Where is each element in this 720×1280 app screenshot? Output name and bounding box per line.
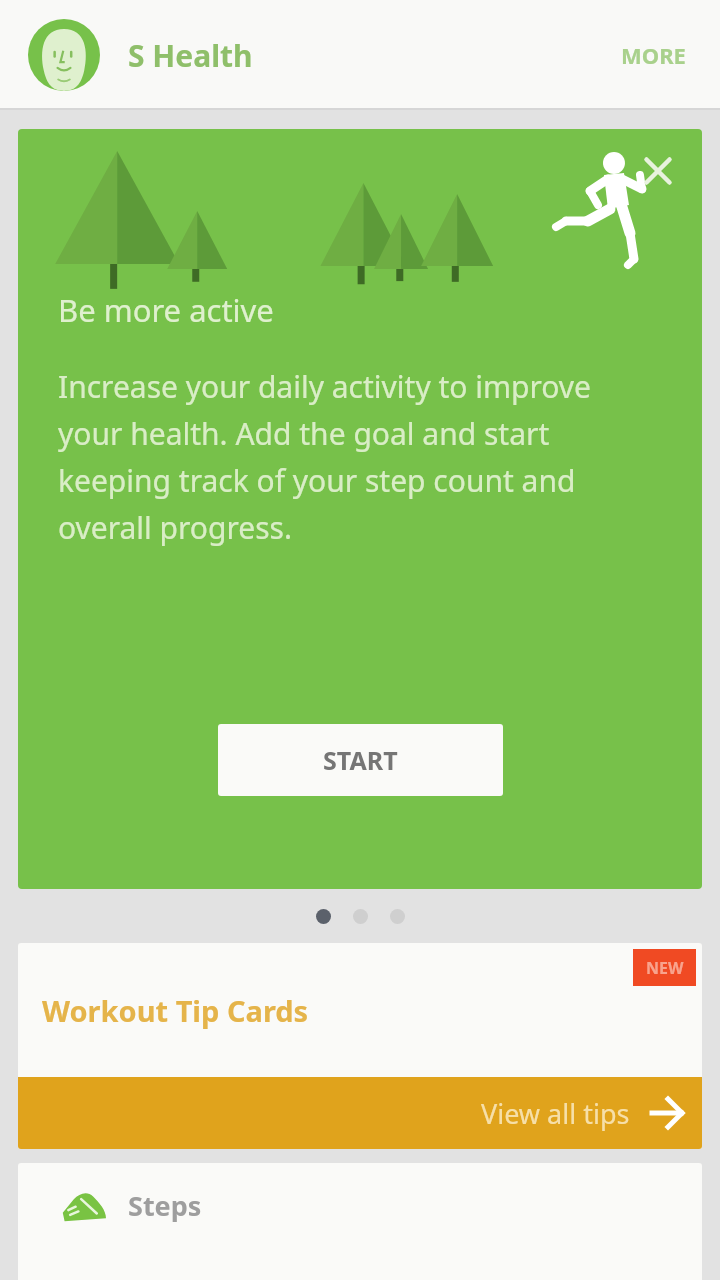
button[interactable]: START [218, 724, 503, 796]
button[interactable]: Close [18, 129, 702, 889]
staticText: NEW [646, 957, 684, 979]
button[interactable] [316, 909, 331, 924]
button[interactable]: NEW [18, 943, 702, 1077]
staticText: Steps [128, 1187, 202, 1224]
staticText: Be more active [58, 289, 274, 331]
button[interactable]: MORE [615, 34, 692, 76]
staticText: Workout Tip Cards [42, 991, 309, 1030]
button[interactable] [390, 909, 405, 924]
button[interactable]: Close [634, 147, 682, 195]
button[interactable]: Steps [18, 1163, 702, 1280]
staticText: START [323, 743, 398, 777]
staticText: View all tips [481, 1095, 630, 1132]
staticText: Increase your daily activity to improve … [58, 366, 662, 548]
button[interactable]: View all tips [18, 1077, 702, 1149]
staticText: S Health [128, 35, 253, 76]
button[interactable]: Profile [28, 19, 100, 91]
staticText: MORE [621, 40, 686, 70]
button[interactable] [353, 909, 368, 924]
